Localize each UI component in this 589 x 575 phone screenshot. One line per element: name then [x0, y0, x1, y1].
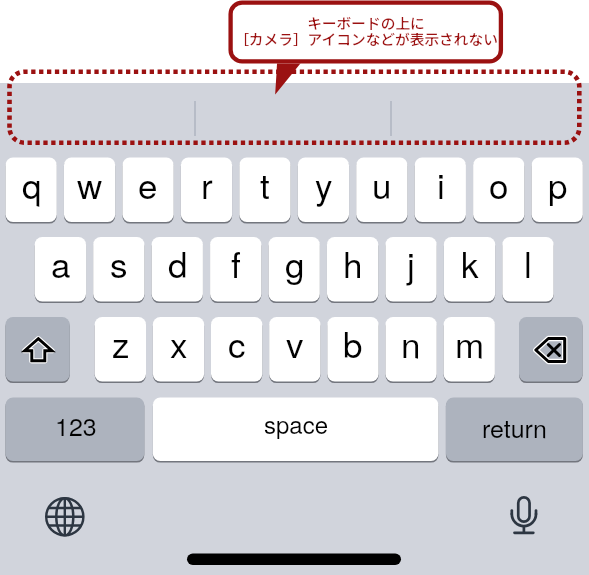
- button[interactable]: b: [327, 317, 378, 382]
- button[interactable]: m: [444, 317, 495, 382]
- button[interactable]: a: [35, 237, 86, 302]
- staticText: v: [286, 318, 304, 368]
- staticText: j: [407, 238, 415, 288]
- staticText: q: [22, 159, 42, 209]
- button[interactable]: n: [385, 317, 436, 382]
- staticText: x: [170, 318, 188, 368]
- button[interactable]: l: [502, 237, 553, 302]
- button[interactable]: u: [356, 158, 407, 223]
- staticText: r: [201, 159, 213, 209]
- button[interactable]: return: [446, 398, 583, 462]
- staticText: b: [343, 318, 363, 368]
- button[interactable]: i: [415, 158, 466, 223]
- button[interactable]: d: [152, 237, 203, 302]
- button[interactable]: space: [153, 398, 439, 462]
- button[interactable]: v: [269, 317, 320, 382]
- staticText: space: [264, 406, 329, 440]
- button[interactable]: s: [93, 237, 144, 302]
- staticText: n: [401, 318, 421, 368]
- button[interactable]: z: [95, 317, 146, 382]
- button[interactable]: x: [153, 317, 204, 382]
- button[interactable]: Change keyboard: [40, 492, 89, 541]
- staticText: h: [343, 238, 363, 288]
- button[interactable]: c: [211, 317, 262, 382]
- staticText: y: [315, 159, 333, 209]
- button[interactable]: p: [532, 158, 583, 223]
- staticText: w: [77, 159, 103, 209]
- button[interactable]: k: [444, 237, 495, 302]
- staticText: 123: [55, 407, 97, 443]
- button[interactable]: g: [269, 237, 320, 302]
- staticText: m: [455, 318, 485, 368]
- button[interactable]: t: [239, 158, 290, 223]
- staticText: g: [285, 238, 305, 288]
- staticText: s: [110, 238, 128, 288]
- button[interactable]: f: [210, 237, 261, 302]
- staticText: a: [51, 238, 71, 288]
- staticText: i: [437, 159, 445, 209]
- button[interactable]: 123: [6, 398, 145, 462]
- staticText: e: [138, 159, 158, 209]
- button[interactable]: q: [6, 158, 57, 223]
- staticText: k: [461, 238, 479, 288]
- button[interactable]: Shift: [6, 317, 70, 382]
- button[interactable]: r: [181, 158, 232, 223]
- staticText: c: [228, 318, 246, 368]
- button[interactable]: o: [473, 158, 524, 223]
- button[interactable]: y: [298, 158, 349, 223]
- button[interactable]: h: [327, 237, 378, 302]
- staticText: t: [260, 159, 270, 209]
- staticText: キーボードの上に ［カメラ］アイコンなどが表示されない: [234, 12, 498, 49]
- staticText: return: [482, 409, 547, 445]
- staticText: f: [231, 238, 241, 288]
- staticText: d: [168, 238, 188, 288]
- staticText: u: [372, 159, 392, 209]
- staticText: p: [548, 159, 568, 209]
- staticText: l: [524, 238, 532, 288]
- button[interactable]: j: [385, 237, 436, 302]
- button[interactable]: w: [64, 158, 115, 223]
- button[interactable]: Dictation: [499, 490, 548, 539]
- button[interactable]: e: [122, 158, 173, 223]
- staticText: o: [489, 159, 509, 209]
- staticText: z: [112, 318, 130, 368]
- button[interactable]: Backspace: [519, 317, 583, 382]
